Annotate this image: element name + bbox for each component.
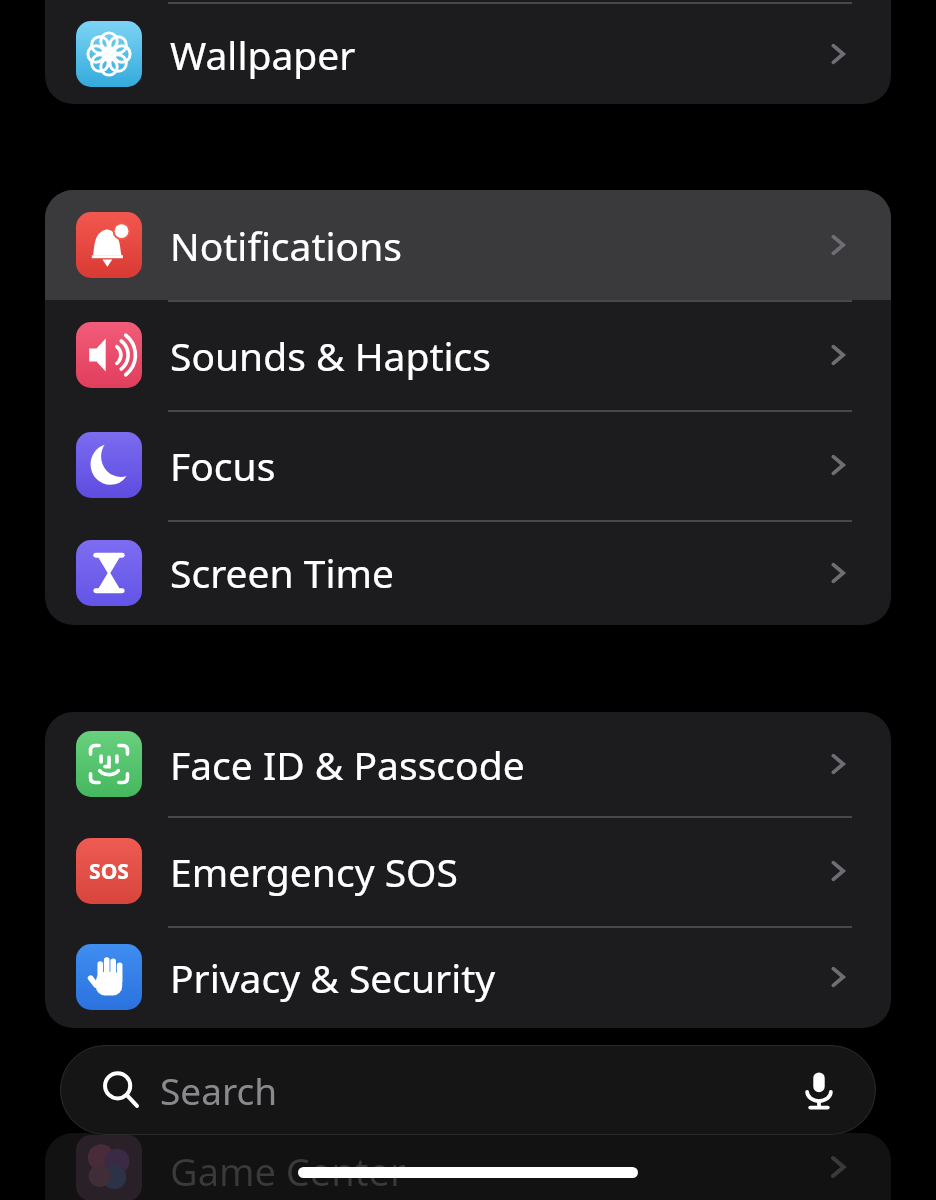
- button[interactable]: Game Center: [45, 1133, 891, 1200]
- staticText: Search: [160, 1065, 278, 1115]
- button[interactable]: Notifications: [45, 190, 891, 300]
- staticText: Wallpaper: [170, 28, 356, 81]
- button[interactable]: Face ID & Passcode: [45, 712, 891, 816]
- button[interactable]: Screen Time: [45, 520, 891, 625]
- button[interactable]: SOS: [45, 816, 891, 926]
- staticText: Screen Time: [170, 546, 394, 599]
- button[interactable]: Search: [60, 1045, 876, 1135]
- button[interactable]: Wallpaper: [45, 4, 891, 104]
- button[interactable]: Focus: [45, 410, 891, 520]
- staticText: Focus: [170, 439, 276, 492]
- staticText: Emergency SOS: [170, 845, 458, 898]
- staticText: Notifications: [170, 219, 402, 272]
- button[interactable]: Voice search: [792, 1063, 846, 1117]
- staticText: Sounds & Haptics: [170, 329, 492, 382]
- staticText: Face ID & Passcode: [170, 738, 525, 791]
- staticText: Privacy & Security: [170, 951, 496, 1004]
- staticText: Game Center: [170, 1145, 406, 1197]
- staticText: SOS: [89, 857, 129, 886]
- button[interactable]: Privacy & Security: [45, 926, 891, 1028]
- button[interactable]: Sounds & Haptics: [45, 300, 891, 410]
